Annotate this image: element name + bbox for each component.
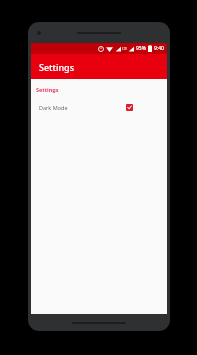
staticText: 95%	[136, 45, 146, 52]
staticText: Settings	[39, 61, 75, 73]
button[interactable]: Dark Mode	[31, 99, 167, 116]
staticText: LTE	[122, 47, 127, 51]
staticText: Dark Mode	[39, 104, 126, 111]
button[interactable]: Dark Mode checkbox, checked	[126, 104, 133, 111]
staticText: 9:40	[154, 45, 164, 52]
staticText: Settings	[36, 86, 59, 93]
